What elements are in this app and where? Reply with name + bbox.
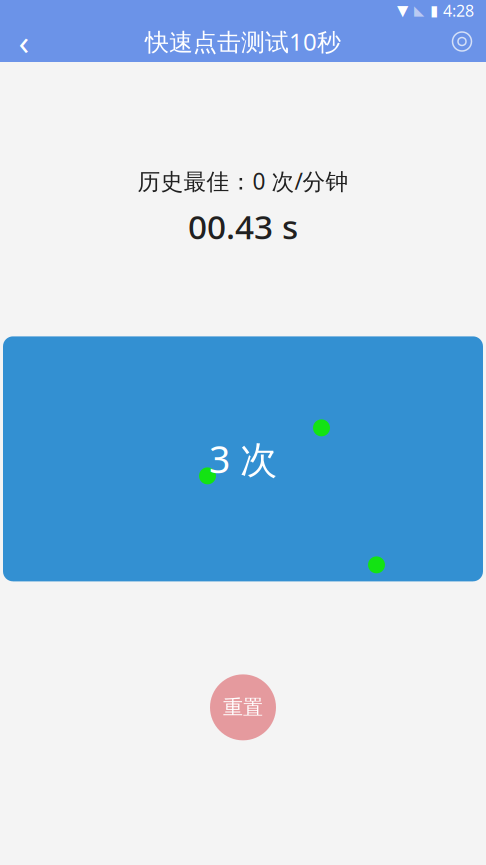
button[interactable]: 重置 <box>210 674 276 740</box>
staticText: ▼ <box>397 2 408 19</box>
staticText: 3 次 <box>209 434 277 484</box>
button[interactable]: Settings <box>438 21 486 62</box>
staticText: 快速点击测试10秒 <box>145 26 341 57</box>
staticText: 历史最佳：0 次/分钟 <box>137 166 348 196</box>
staticText: ‹ <box>18 18 29 64</box>
staticText: ◣ <box>414 3 424 18</box>
button[interactable]: Back <box>0 21 48 62</box>
staticText: ▮ <box>430 2 438 19</box>
staticText: 重置 <box>223 695 263 720</box>
staticText: 00.43 s <box>188 204 298 248</box>
staticText: 4:28 <box>443 0 474 21</box>
